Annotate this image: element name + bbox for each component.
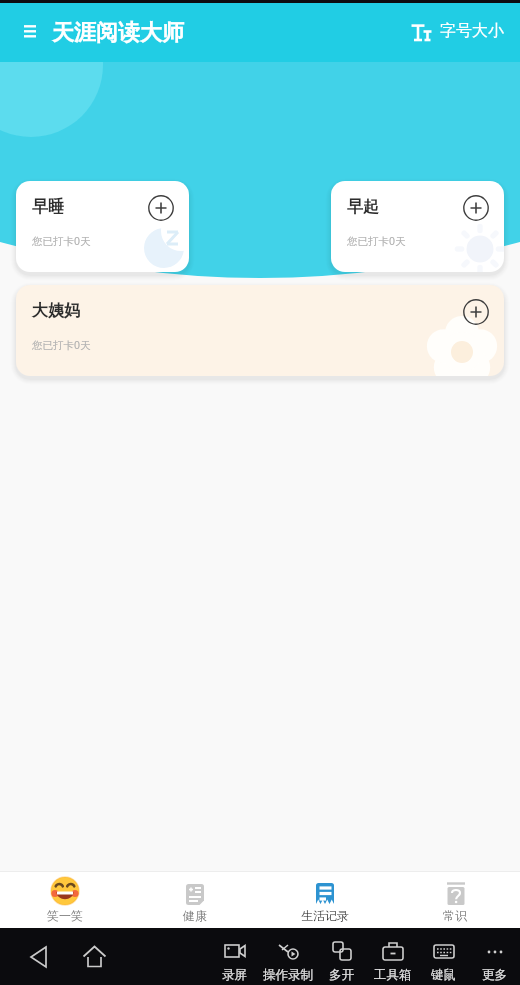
button[interactable]: 早睡 bbox=[16, 181, 189, 272]
staticText: 更多 bbox=[482, 967, 507, 983]
button[interactable]: 录屏 bbox=[209, 928, 260, 985]
button[interactable]: Add 早睡 bbox=[147, 194, 175, 222]
button[interactable]: 大姨妈 bbox=[16, 285, 504, 376]
staticText: 生活记录 bbox=[301, 908, 349, 923]
staticText: 字号大小 bbox=[440, 21, 504, 41]
staticText: 您已打卡0天 bbox=[347, 234, 406, 248]
button[interactable]: 笑一笑 bbox=[0, 871, 130, 928]
staticText: 大姨妈 bbox=[32, 301, 80, 321]
button[interactable]: 键鼠 bbox=[418, 928, 469, 985]
button[interactable]: Back bbox=[0, 928, 76, 985]
button[interactable]: Add 早起 bbox=[462, 194, 490, 222]
staticText: 天涯阅读大师 bbox=[52, 19, 184, 47]
button[interactable]: 更多 bbox=[469, 928, 520, 985]
staticText: 您已打卡0天 bbox=[32, 338, 91, 352]
staticText: 常识 bbox=[443, 908, 467, 923]
button[interactable]: Menu bbox=[14, 15, 46, 47]
staticText: 早睡 bbox=[32, 197, 64, 217]
staticText: 键鼠 bbox=[431, 967, 456, 983]
button[interactable]: 多开 bbox=[316, 928, 367, 985]
button[interactable]: Add 大姨妈 bbox=[462, 298, 490, 326]
button[interactable]: 早起 bbox=[331, 181, 504, 272]
button[interactable]: Home bbox=[76, 928, 112, 985]
button[interactable]: 常识 bbox=[390, 871, 520, 928]
staticText: 笑一笑 bbox=[47, 908, 83, 923]
button[interactable]: 字号大小 bbox=[408, 15, 507, 47]
staticText: 多开 bbox=[329, 967, 354, 983]
button[interactable]: 生活记录 bbox=[260, 871, 390, 928]
staticText: 早起 bbox=[347, 197, 379, 217]
staticText: 健康 bbox=[183, 908, 207, 923]
staticText: 录屏 bbox=[222, 967, 247, 983]
staticText: 操作录制 bbox=[263, 967, 313, 983]
button[interactable]: 健康 bbox=[130, 871, 260, 928]
staticText: 工具箱 bbox=[374, 967, 412, 983]
button[interactable]: 操作录制 bbox=[260, 928, 316, 985]
button[interactable]: 工具箱 bbox=[367, 928, 418, 985]
staticText: 您已打卡0天 bbox=[32, 234, 91, 248]
